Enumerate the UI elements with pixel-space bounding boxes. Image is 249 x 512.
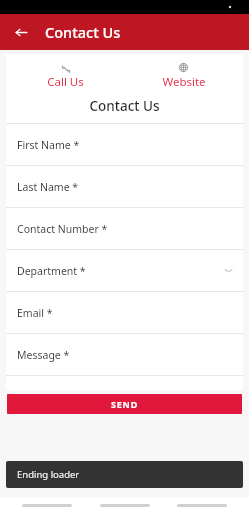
staticText: Website	[162, 74, 206, 90]
button[interactable]: Website	[124, 60, 243, 92]
staticText: Last Name *	[17, 180, 79, 194]
button[interactable]: Message *	[6, 334, 243, 375]
button[interactable]: Contact Number *	[6, 208, 243, 249]
staticText: Contact Us	[45, 22, 121, 42]
button[interactable]: First Name *	[6, 124, 243, 165]
button[interactable]: Back	[22, 504, 72, 507]
button[interactable]: Recents	[177, 504, 227, 507]
staticText: Ending loader	[17, 468, 80, 481]
staticText: Message *	[17, 348, 70, 362]
staticText: First Name *	[17, 138, 80, 152]
button[interactable]: Email *	[6, 292, 243, 333]
staticText: Email *	[17, 306, 53, 320]
staticText: Call Us	[47, 74, 84, 90]
button[interactable]: Call Us	[6, 60, 124, 92]
staticText: SEND	[111, 398, 139, 410]
staticText: Department *	[17, 264, 86, 278]
staticText: Contact Number *	[17, 222, 108, 236]
staticText: Contact Us	[89, 97, 160, 115]
button[interactable]: Home	[100, 504, 150, 507]
button[interactable]: SEND	[7, 394, 242, 414]
button[interactable]: Department *	[6, 250, 243, 291]
button[interactable]: Back	[6, 17, 36, 47]
button[interactable]: Last Name *	[6, 166, 243, 207]
